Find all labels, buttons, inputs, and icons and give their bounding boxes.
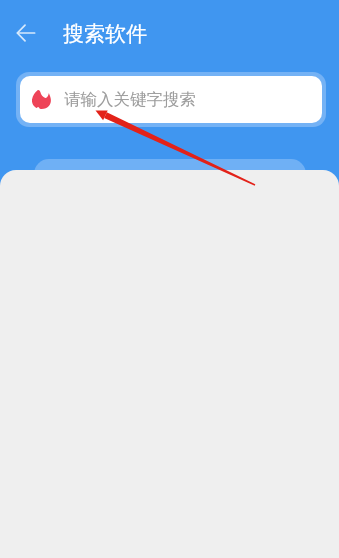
button[interactable]: 请输入关键字搜索 (20, 76, 322, 123)
button[interactable]: Back (9, 16, 43, 50)
staticText: 请输入关键字搜索 (64, 89, 196, 110)
staticText: 搜索软件 (63, 21, 147, 47)
